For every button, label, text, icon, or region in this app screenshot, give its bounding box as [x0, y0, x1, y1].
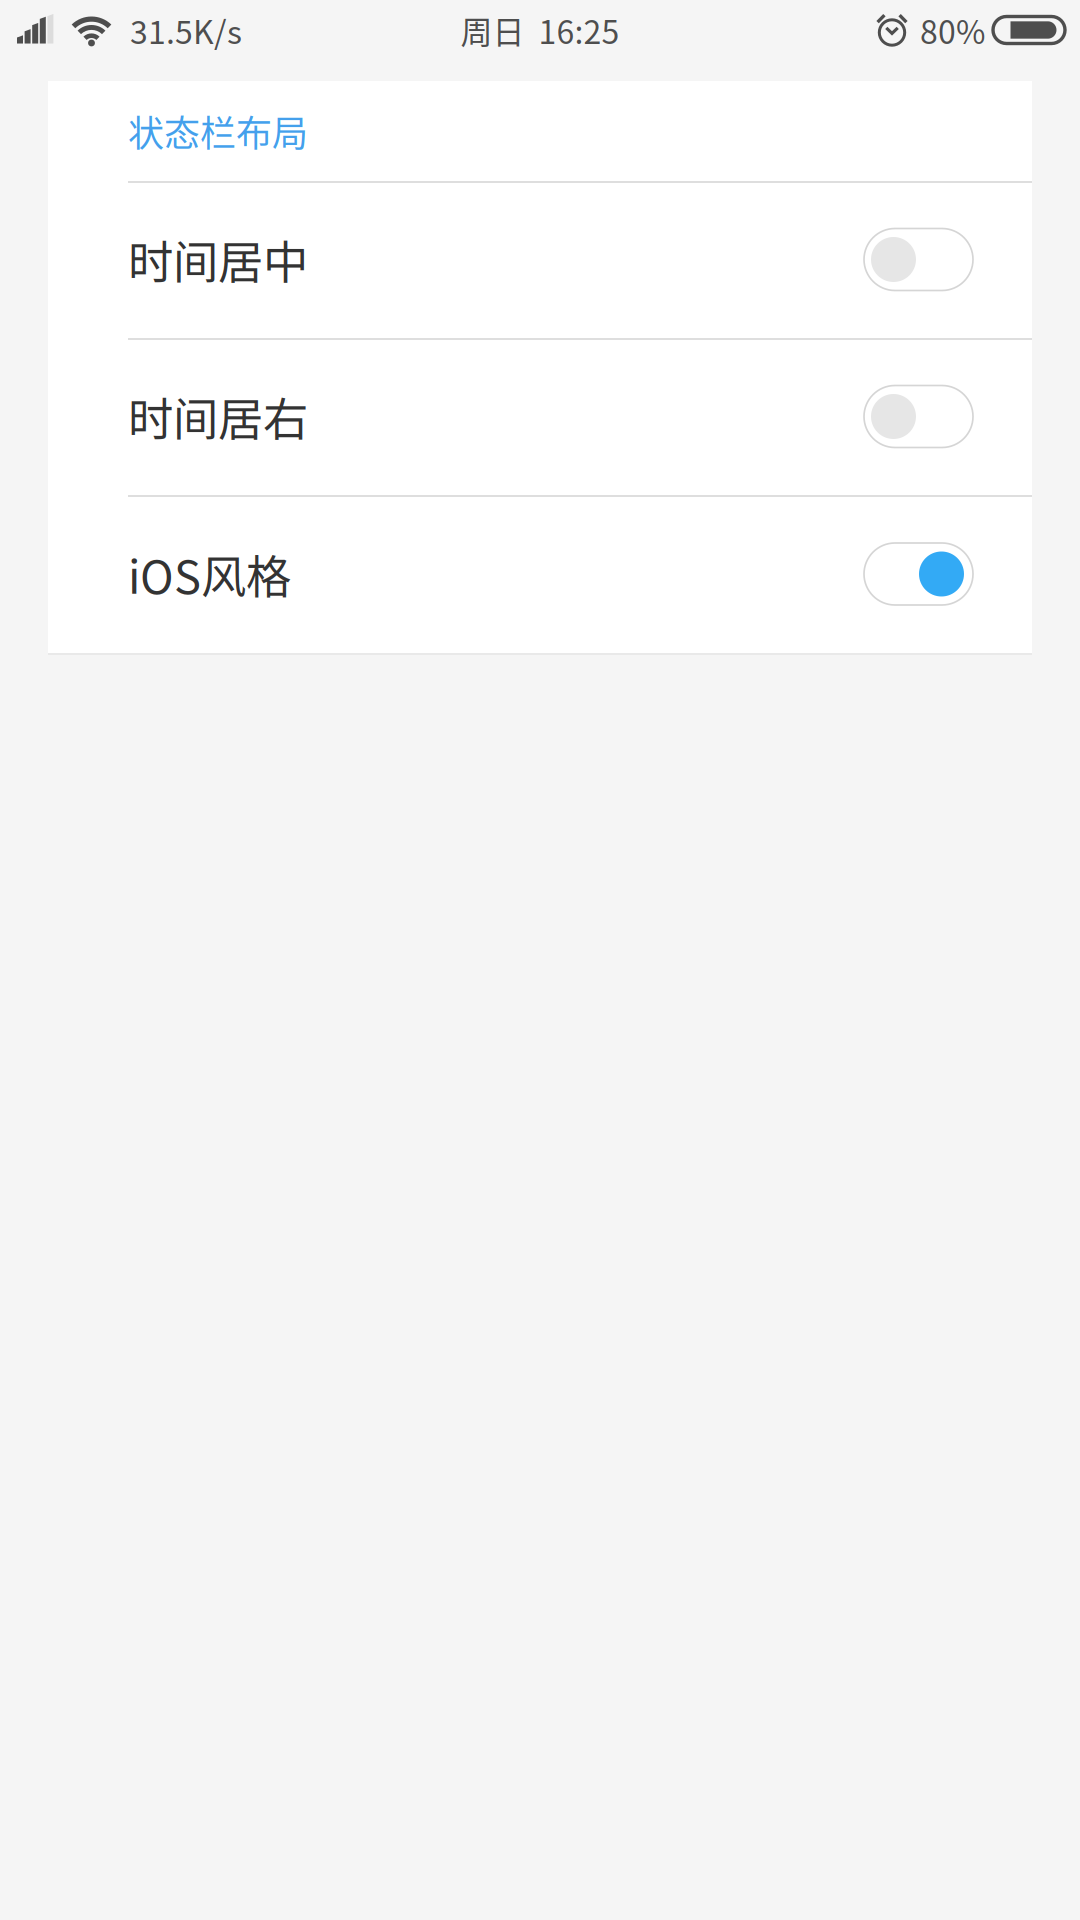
staticText: iOS风格 [128, 541, 291, 607]
button[interactable]: 时间居右 [48, 338, 1032, 495]
button[interactable]: 时间居中 [48, 181, 1032, 338]
button[interactable]: iOS风格 [48, 495, 1032, 653]
staticText: 时间居右 [128, 384, 308, 449]
staticText: 时间居中 [128, 227, 308, 292]
staticText: 状态栏布局 [128, 105, 308, 157]
staticText: 80% [920, 7, 985, 53]
staticText: 周日 16:25 [460, 7, 619, 53]
staticText: 31.5K/s [130, 7, 242, 53]
